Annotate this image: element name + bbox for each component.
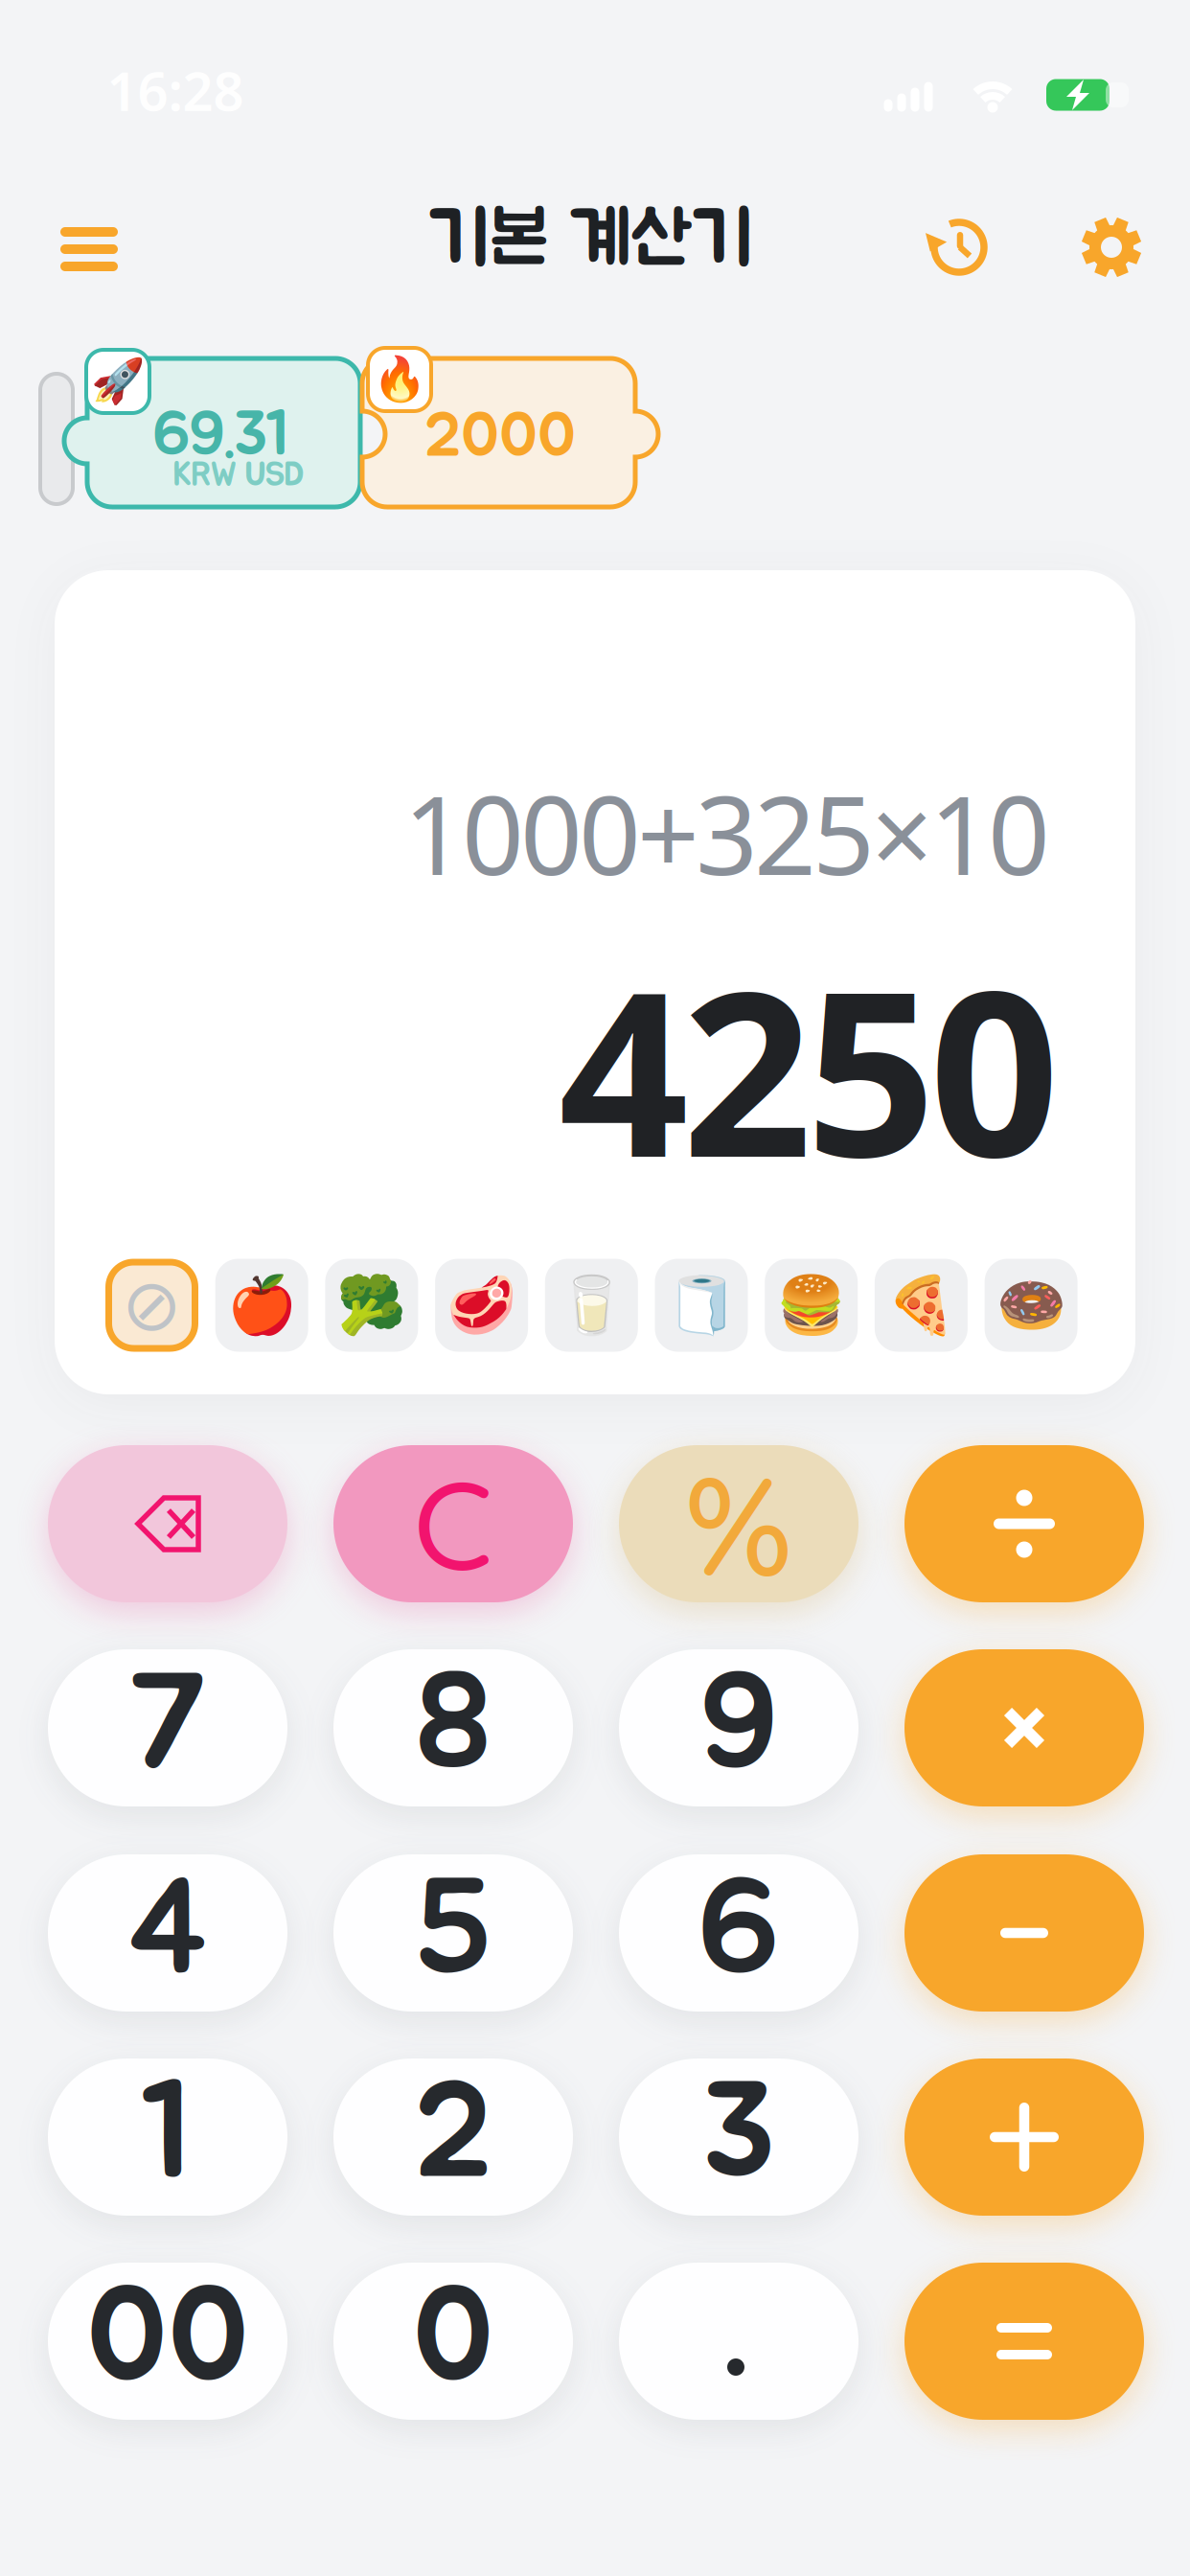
staticText: 4250 [559, 918, 1060, 1220]
staticText: 🥛 [556, 1273, 626, 1337]
button[interactable]: Menu [60, 227, 118, 271]
staticText: 8 [414, 1661, 492, 1794]
button[interactable]: Decimal point [619, 2263, 858, 2420]
button[interactable]: 2 [333, 2058, 573, 2216]
staticText: 기본 계산기 [429, 203, 754, 278]
button[interactable]: Minus [904, 1854, 1144, 2012]
staticText: 4 [126, 1867, 209, 1999]
staticText: 5 [415, 1867, 492, 1999]
staticText: 7 [127, 1661, 208, 1794]
staticText: 🥩 [447, 1273, 517, 1337]
staticText: ⊘ [122, 1265, 182, 1346]
button[interactable]: Burger [765, 1259, 858, 1352]
staticText: C [413, 1447, 493, 1600]
button[interactable]: Multiply [904, 1649, 1144, 1806]
staticText: 69.31 [152, 405, 290, 467]
button[interactable]: 00 [48, 2263, 287, 2420]
button[interactable]: 7 [48, 1649, 287, 1806]
staticText: 1000+325×10 [403, 761, 1050, 905]
button[interactable]: 9 [619, 1649, 858, 1806]
button[interactable]: 4 [48, 1854, 287, 2012]
staticText: 00 [86, 2275, 249, 2408]
button[interactable]: Percent [619, 1445, 858, 1602]
button[interactable]: Apple [215, 1259, 308, 1352]
staticText: 🥦 [337, 1273, 407, 1337]
button[interactable]: Meat [435, 1259, 528, 1352]
staticText: 9 [699, 1661, 778, 1794]
staticText: 2 [414, 2071, 492, 2204]
staticText: 🧻 [666, 1273, 736, 1337]
button[interactable]: 2000 [362, 358, 658, 507]
button[interactable]: Plus [904, 2058, 1144, 2216]
staticText: 🚀 [91, 357, 145, 406]
button[interactable]: 3 [619, 2058, 858, 2216]
staticText: 🍕 [886, 1273, 956, 1337]
button[interactable]: No category [105, 1259, 198, 1352]
staticText: KRW USD [173, 459, 304, 492]
button[interactable]: Divide [904, 1445, 1144, 1602]
staticText: 🍩 [996, 1273, 1066, 1337]
staticText: 🍎 [227, 1273, 297, 1337]
button[interactable]: Broccoli [325, 1259, 418, 1352]
staticText: % [684, 1437, 793, 1610]
button[interactable]: Settings [1079, 215, 1144, 280]
button[interactable]: Pizza [875, 1259, 968, 1352]
button[interactable]: Donut [985, 1259, 1078, 1352]
button[interactable]: Equals [904, 2263, 1144, 2420]
button[interactable]: 6 [619, 1854, 858, 2012]
staticText: 0 [412, 2275, 494, 2408]
button[interactable]: Paper [655, 1259, 748, 1352]
button[interactable]: Milk [545, 1259, 638, 1352]
staticText: 🔥 [373, 355, 426, 404]
button[interactable]: 0 [333, 2263, 573, 2420]
button[interactable]: Clear [333, 1445, 573, 1602]
button[interactable]: 5 [333, 1854, 573, 2012]
button[interactable]: Delete [48, 1445, 287, 1602]
staticText: 1 [140, 2071, 195, 2204]
staticText: 6 [698, 1867, 780, 1999]
staticText: 3 [702, 2071, 775, 2204]
button[interactable]: 8 [333, 1649, 573, 1806]
button[interactable]: KRW USD rate 69.31 [64, 358, 360, 507]
staticText: 16:28 [107, 54, 244, 126]
staticText: 2000 [424, 406, 576, 468]
button[interactable]: History [927, 216, 991, 279]
staticText: 🍔 [776, 1273, 846, 1337]
button[interactable]: 1 [48, 2058, 287, 2216]
